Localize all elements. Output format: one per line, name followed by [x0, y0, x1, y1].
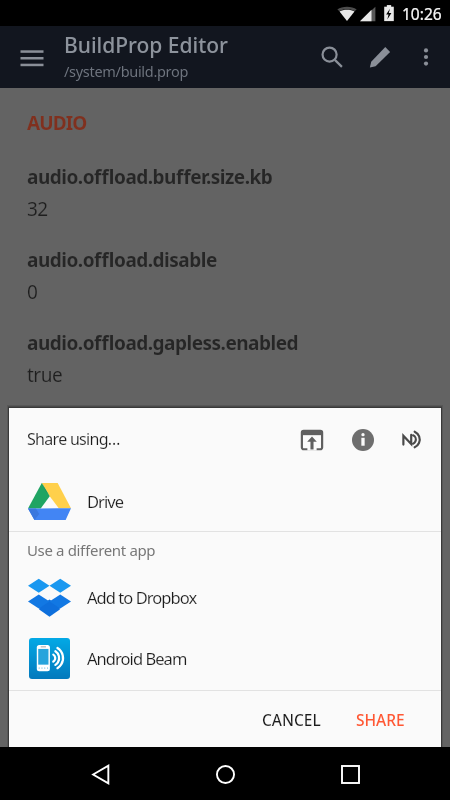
button[interactable]: CANCEL	[245, 697, 338, 742]
staticText: /system/build.prop	[64, 61, 189, 81]
staticText: audio.offload.buffer.size.kb	[27, 164, 273, 190]
button[interactable]: Android Beam	[388, 414, 439, 465]
staticText: true	[27, 362, 63, 388]
staticText: Android Beam	[87, 647, 187, 669]
staticText: AUDIO	[27, 110, 87, 136]
staticText: audio.offload.gapless.enabled	[27, 330, 299, 356]
button[interactable]: Home	[201, 750, 249, 798]
staticText: 0	[27, 279, 38, 305]
button[interactable]: Add to Dropbox	[9, 567, 441, 627]
button[interactable]: Navigation drawer	[8, 33, 56, 81]
staticText: SHARE	[356, 709, 405, 730]
staticText: audio.offload.disable	[27, 247, 217, 273]
button[interactable]: Back	[77, 750, 125, 798]
button[interactable]: SHARE	[338, 697, 441, 742]
staticText: 32	[27, 196, 48, 222]
staticText: Add to Dropbox	[87, 586, 197, 608]
staticText: BuildProp Editor	[64, 31, 228, 60]
staticText: Use a different app	[27, 540, 156, 560]
staticText: 10:26	[402, 3, 442, 24]
button[interactable]: Send to device	[286, 414, 337, 465]
button[interactable]: Edit	[356, 33, 404, 81]
button[interactable]: Drive	[9, 470, 441, 531]
staticText: Share using…	[27, 428, 120, 450]
button[interactable]: Search	[308, 33, 356, 81]
button[interactable]: Recent apps	[326, 750, 374, 798]
staticText: CANCEL	[262, 709, 321, 730]
button[interactable]: More options	[404, 35, 448, 79]
button[interactable]: Info	[337, 414, 388, 465]
staticText: Drive	[87, 490, 124, 512]
button[interactable]: Android Beam	[9, 627, 441, 688]
